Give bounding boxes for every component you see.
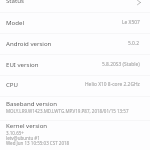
staticText: Model <box>6 18 24 26</box>
staticText: 5.0.2 <box>128 40 140 47</box>
staticText: 5.8.20S3 (Stable) <box>102 61 140 68</box>
staticText: Android version <box>6 39 52 47</box>
staticText: letv@ubuntu #1 <box>6 135 40 141</box>
staticText: Kernel version <box>6 121 48 129</box>
staticText: Status <box>6 0 24 4</box>
staticText: 3.10.65+ <box>6 130 24 136</box>
button[interactable]: Kernel version <box>0 121 150 150</box>
button[interactable]: Status <box>0 0 150 12</box>
staticText: Baseband version <box>6 99 57 107</box>
staticText: CPU <box>6 80 18 88</box>
button[interactable]: Android version <box>0 33 150 54</box>
staticText: MOLY.LR9.W1423.MD.LWTG.MP.V19.P87, 2018/… <box>6 108 129 114</box>
other: Status details <box>137 0 141 5</box>
staticText: EUI version <box>6 60 39 68</box>
staticText: Helio X10 8-core 2.2GHz <box>85 81 140 88</box>
button[interactable]: Model <box>0 12 150 33</box>
button[interactable]: CPU <box>0 75 150 96</box>
button[interactable]: Baseband version <box>0 96 150 120</box>
staticText: Le X507 <box>122 19 140 26</box>
button[interactable]: EUI version <box>0 54 150 75</box>
staticText: Wed Jun 13 10:55:03 CST 2018 <box>6 140 70 146</box>
